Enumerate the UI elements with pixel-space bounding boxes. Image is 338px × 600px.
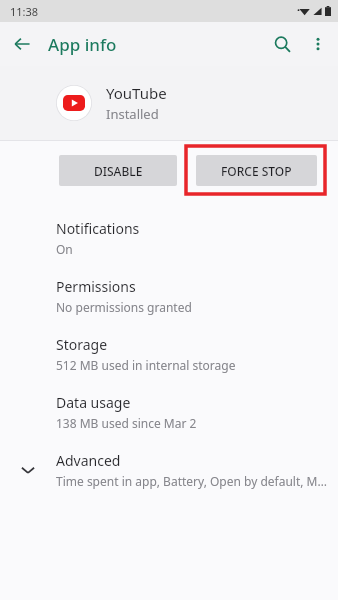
button[interactable]: More options (300, 26, 336, 62)
staticText: Installed (106, 105, 159, 123)
staticText: Storage (56, 335, 108, 354)
button[interactable]: Permissions (0, 267, 338, 325)
button[interactable]: Back (6, 28, 38, 60)
staticText: FORCE STOP (221, 163, 292, 179)
staticText: 138 MB used since Mar 2 (56, 415, 197, 431)
staticText: YouTube (106, 83, 167, 103)
staticText: Notifications (56, 219, 140, 238)
staticText: Data usage (56, 393, 131, 412)
staticText: Time spent in app, Battery, Open by defa… (56, 473, 328, 489)
button[interactable]: Notifications (0, 209, 338, 267)
staticText: Advanced (56, 451, 121, 470)
button[interactable]: Advanced (0, 441, 338, 499)
staticText: 11:38 (10, 4, 39, 19)
button[interactable]: Data usage (0, 383, 338, 441)
staticText: No permissions granted (56, 299, 192, 315)
button[interactable]: Search (264, 26, 300, 62)
staticText: 512 MB used in internal storage (56, 357, 236, 373)
button[interactable]: FORCE STOP (196, 155, 317, 186)
button[interactable]: DISABLE (59, 155, 177, 186)
staticText: DISABLE (94, 163, 143, 179)
button[interactable]: Storage (0, 325, 338, 383)
staticText: App info (48, 33, 117, 56)
staticText: On (56, 241, 73, 257)
staticText: Permissions (56, 277, 136, 296)
